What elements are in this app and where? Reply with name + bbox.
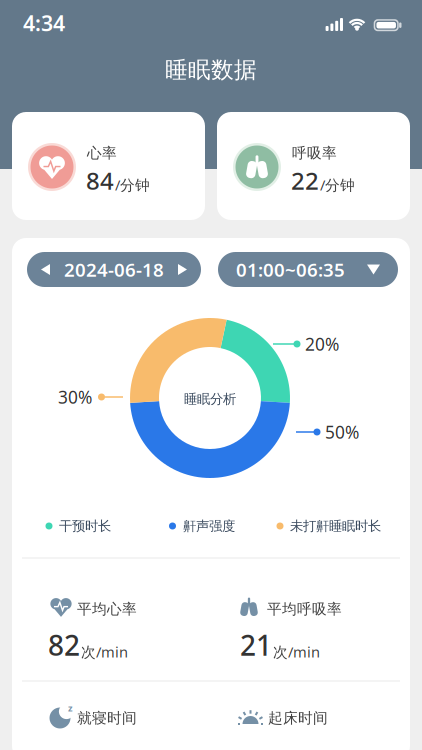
staticText: 82 <box>48 626 80 664</box>
staticText: 心率 <box>87 144 117 162</box>
staticText: 84 <box>86 165 114 196</box>
staticText: 鼾声强度 <box>183 518 235 534</box>
staticText: 4:34 <box>23 9 65 37</box>
staticText: 01:00~06:35 <box>236 257 345 282</box>
staticText: 呼吸率 <box>292 144 337 162</box>
button[interactable]: 01:00~06:35 <box>218 252 398 287</box>
staticText: 睡眠分析 <box>184 391 236 407</box>
staticText: 平均心率 <box>77 600 137 618</box>
staticText: 就寝时间 <box>77 709 137 727</box>
staticText: 次/min <box>273 642 320 662</box>
button[interactable]: 2024-06-18 <box>27 252 201 287</box>
staticText: 起床时间 <box>268 709 328 727</box>
staticText: 30% <box>58 385 92 408</box>
staticText: 50% <box>325 420 359 443</box>
staticText: /分钟 <box>320 175 355 194</box>
staticText: 平均呼吸率 <box>267 600 342 618</box>
staticText: 20% <box>305 332 339 355</box>
staticText: 2024-06-18 <box>64 257 164 282</box>
staticText: 22 <box>291 165 319 196</box>
staticText: 次/min <box>81 642 128 662</box>
staticText: /分钟 <box>115 175 150 194</box>
button[interactable]: 心率 <box>12 112 205 220</box>
staticText: 睡眠数据 <box>165 56 257 84</box>
staticText: 干预时长 <box>59 518 111 534</box>
staticText: 21 <box>240 626 272 664</box>
staticText: 未打鼾睡眠时长 <box>290 518 381 534</box>
button[interactable]: 呼吸率 <box>217 112 410 220</box>
staticText: z <box>68 702 73 714</box>
